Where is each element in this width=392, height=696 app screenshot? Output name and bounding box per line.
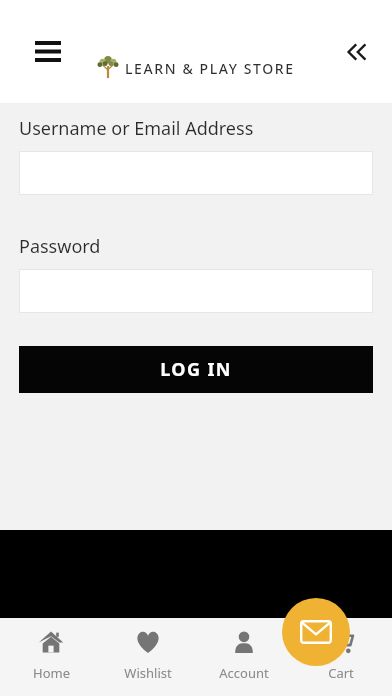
button[interactable]: LOG IN [19,346,373,393]
button[interactable]: Menu [25,31,71,71]
button[interactable]: Home [6,618,96,682]
button[interactable] [19,151,373,195]
button[interactable]: Account [199,618,289,682]
button[interactable]: LEARN & PLAY STORE [97,56,295,80]
button[interactable]: Wishlist [103,618,193,682]
staticText: Home [33,664,70,682]
staticText: Wishlist [124,664,172,682]
staticText: LOG IN [160,357,232,382]
staticText: Cart [328,664,354,682]
button[interactable]: Cart [296,618,386,682]
staticText: LEARN & PLAY STORE [125,59,295,78]
button[interactable]: Back [332,30,378,74]
button[interactable]: Contact us [282,598,350,666]
staticText: Password [19,234,101,259]
button[interactable] [19,269,373,313]
staticText: Username or Email Address [19,116,254,141]
staticText: Account [219,664,269,682]
